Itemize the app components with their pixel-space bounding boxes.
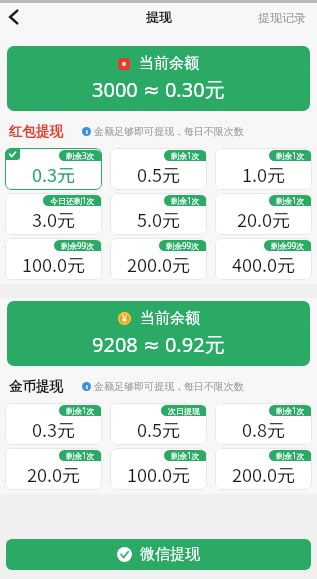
staticText: 剩余1次 [171,195,200,206]
staticText: 剩余1次 [66,405,95,416]
staticText: 剩余99次 [166,240,200,251]
button[interactable]: 1.0元 [215,148,312,190]
staticText: i [86,128,88,136]
staticText: 400.0元 [232,251,295,277]
staticText: 剩余1次 [276,195,305,206]
staticText: 20.0元 [27,461,80,487]
staticText: 0.8元 [242,416,285,442]
staticText: 剩余1次 [66,450,95,461]
staticText: 20.0元 [237,206,290,232]
button[interactable]: 0.8元 [215,403,312,445]
staticText: 剩余1次 [276,405,305,416]
staticText: 当前余额 [140,309,200,328]
staticText: 5.0元 [137,206,180,232]
staticText: 剩余1次 [171,450,200,461]
button[interactable]: 200.0元 [110,238,207,280]
staticText: 今日还剩1次 [50,195,95,206]
button[interactable]: 20.0元 [5,448,102,490]
button[interactable]: 3.0元 [5,193,102,235]
staticText: 剩余1次 [276,150,305,161]
staticText: 剩余99次 [271,240,305,251]
button[interactable]: 当前余额 [7,46,310,111]
staticText: 0.3元 [32,416,75,442]
staticText: 3.0元 [32,206,75,232]
staticText: 提现记录 [258,10,306,25]
button[interactable]: 100.0元 [5,238,102,280]
button[interactable]: 400.0元 [215,238,312,280]
staticText: 剩余3次 [66,150,95,161]
button[interactable]: 5.0元 [110,193,207,235]
staticText: 9208 ≈ 0.92元 [92,331,225,358]
staticText: 微信提现 [140,545,200,564]
button[interactable]: 100.0元 [110,448,207,490]
button[interactable]: 200.0元 [215,448,312,490]
staticText: 100.0元 [127,461,190,487]
staticText: 剩余1次 [276,450,305,461]
button[interactable]: 微信提现 [6,539,311,570]
staticText: ¥ [122,312,127,325]
staticText: 1.0元 [242,161,285,187]
button[interactable]: 提现记录 [247,4,317,31]
staticText: 0.5元 [137,416,180,442]
button[interactable]: ¥ [7,301,310,366]
staticText: 次日提现 [168,406,200,416]
button[interactable]: 0.3元 [5,403,102,445]
button[interactable]: 0.3元 [5,148,102,190]
staticText: 200.0元 [127,251,190,277]
staticText: 3000 ≈ 0.30元 [92,76,225,103]
staticText: 提现 [146,9,172,25]
staticText: 200.0元 [232,461,295,487]
staticText: 剩余1次 [171,150,200,161]
button[interactable]: 0.5元 [110,403,207,445]
staticText: 红包提现 [9,123,63,140]
staticText: 0.5元 [137,161,180,187]
staticText: 金额足够即可提现，每日不限次数 [94,380,244,393]
staticText: 0.3元 [32,161,75,187]
staticText: 当前余额 [139,54,199,73]
button[interactable]: Back [0,4,26,30]
staticText: 金额足够即可提现，每日不限次数 [94,125,244,138]
button[interactable]: 20.0元 [215,193,312,235]
staticText: 100.0元 [22,251,85,277]
button[interactable]: 0.5元 [110,148,207,190]
staticText: i [86,383,88,391]
staticText: 金币提现 [9,378,63,395]
staticText: 剩余99次 [61,240,95,251]
